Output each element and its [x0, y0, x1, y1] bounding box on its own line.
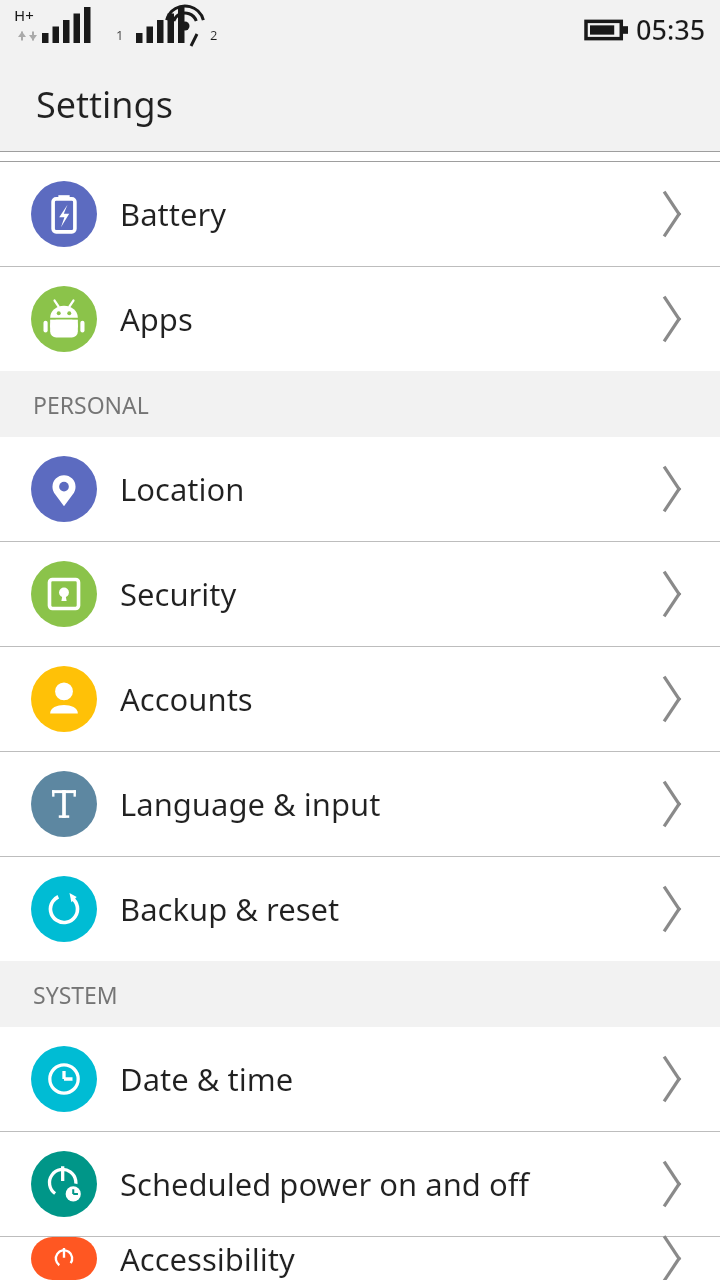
staticText: Settings: [36, 80, 173, 129]
button[interactable]: Accessibility: [0, 1237, 720, 1280]
button[interactable]: Apps: [0, 267, 720, 371]
staticText: Accessibility: [120, 1238, 642, 1280]
button[interactable]: Backup & reset: [0, 857, 720, 961]
staticText: 1: [116, 26, 124, 44]
staticText: Security: [120, 573, 642, 615]
staticText: Battery: [120, 193, 642, 235]
staticText: Language & input: [120, 783, 642, 825]
staticText: 2: [210, 26, 218, 44]
staticText: Apps: [120, 298, 642, 340]
staticText: Scheduled power on and off: [120, 1163, 642, 1205]
button[interactable]: Battery: [0, 162, 720, 266]
button[interactable]: Accounts: [0, 647, 720, 751]
button[interactable]: Scheduled power on and off: [0, 1132, 720, 1236]
button[interactable]: Language & input: [0, 752, 720, 856]
staticText: PERSONAL: [33, 389, 149, 420]
staticText: H+: [14, 5, 34, 25]
button[interactable]: Location: [0, 437, 720, 541]
staticText: Accounts: [120, 678, 642, 720]
staticText: Location: [120, 468, 642, 510]
staticText: SYSTEM: [33, 979, 118, 1010]
button[interactable]: Date & time: [0, 1027, 720, 1131]
staticText: 05:35: [636, 11, 706, 48]
staticText: Date & time: [120, 1058, 642, 1100]
staticText: Backup & reset: [120, 888, 642, 930]
button[interactable]: Security: [0, 542, 720, 646]
